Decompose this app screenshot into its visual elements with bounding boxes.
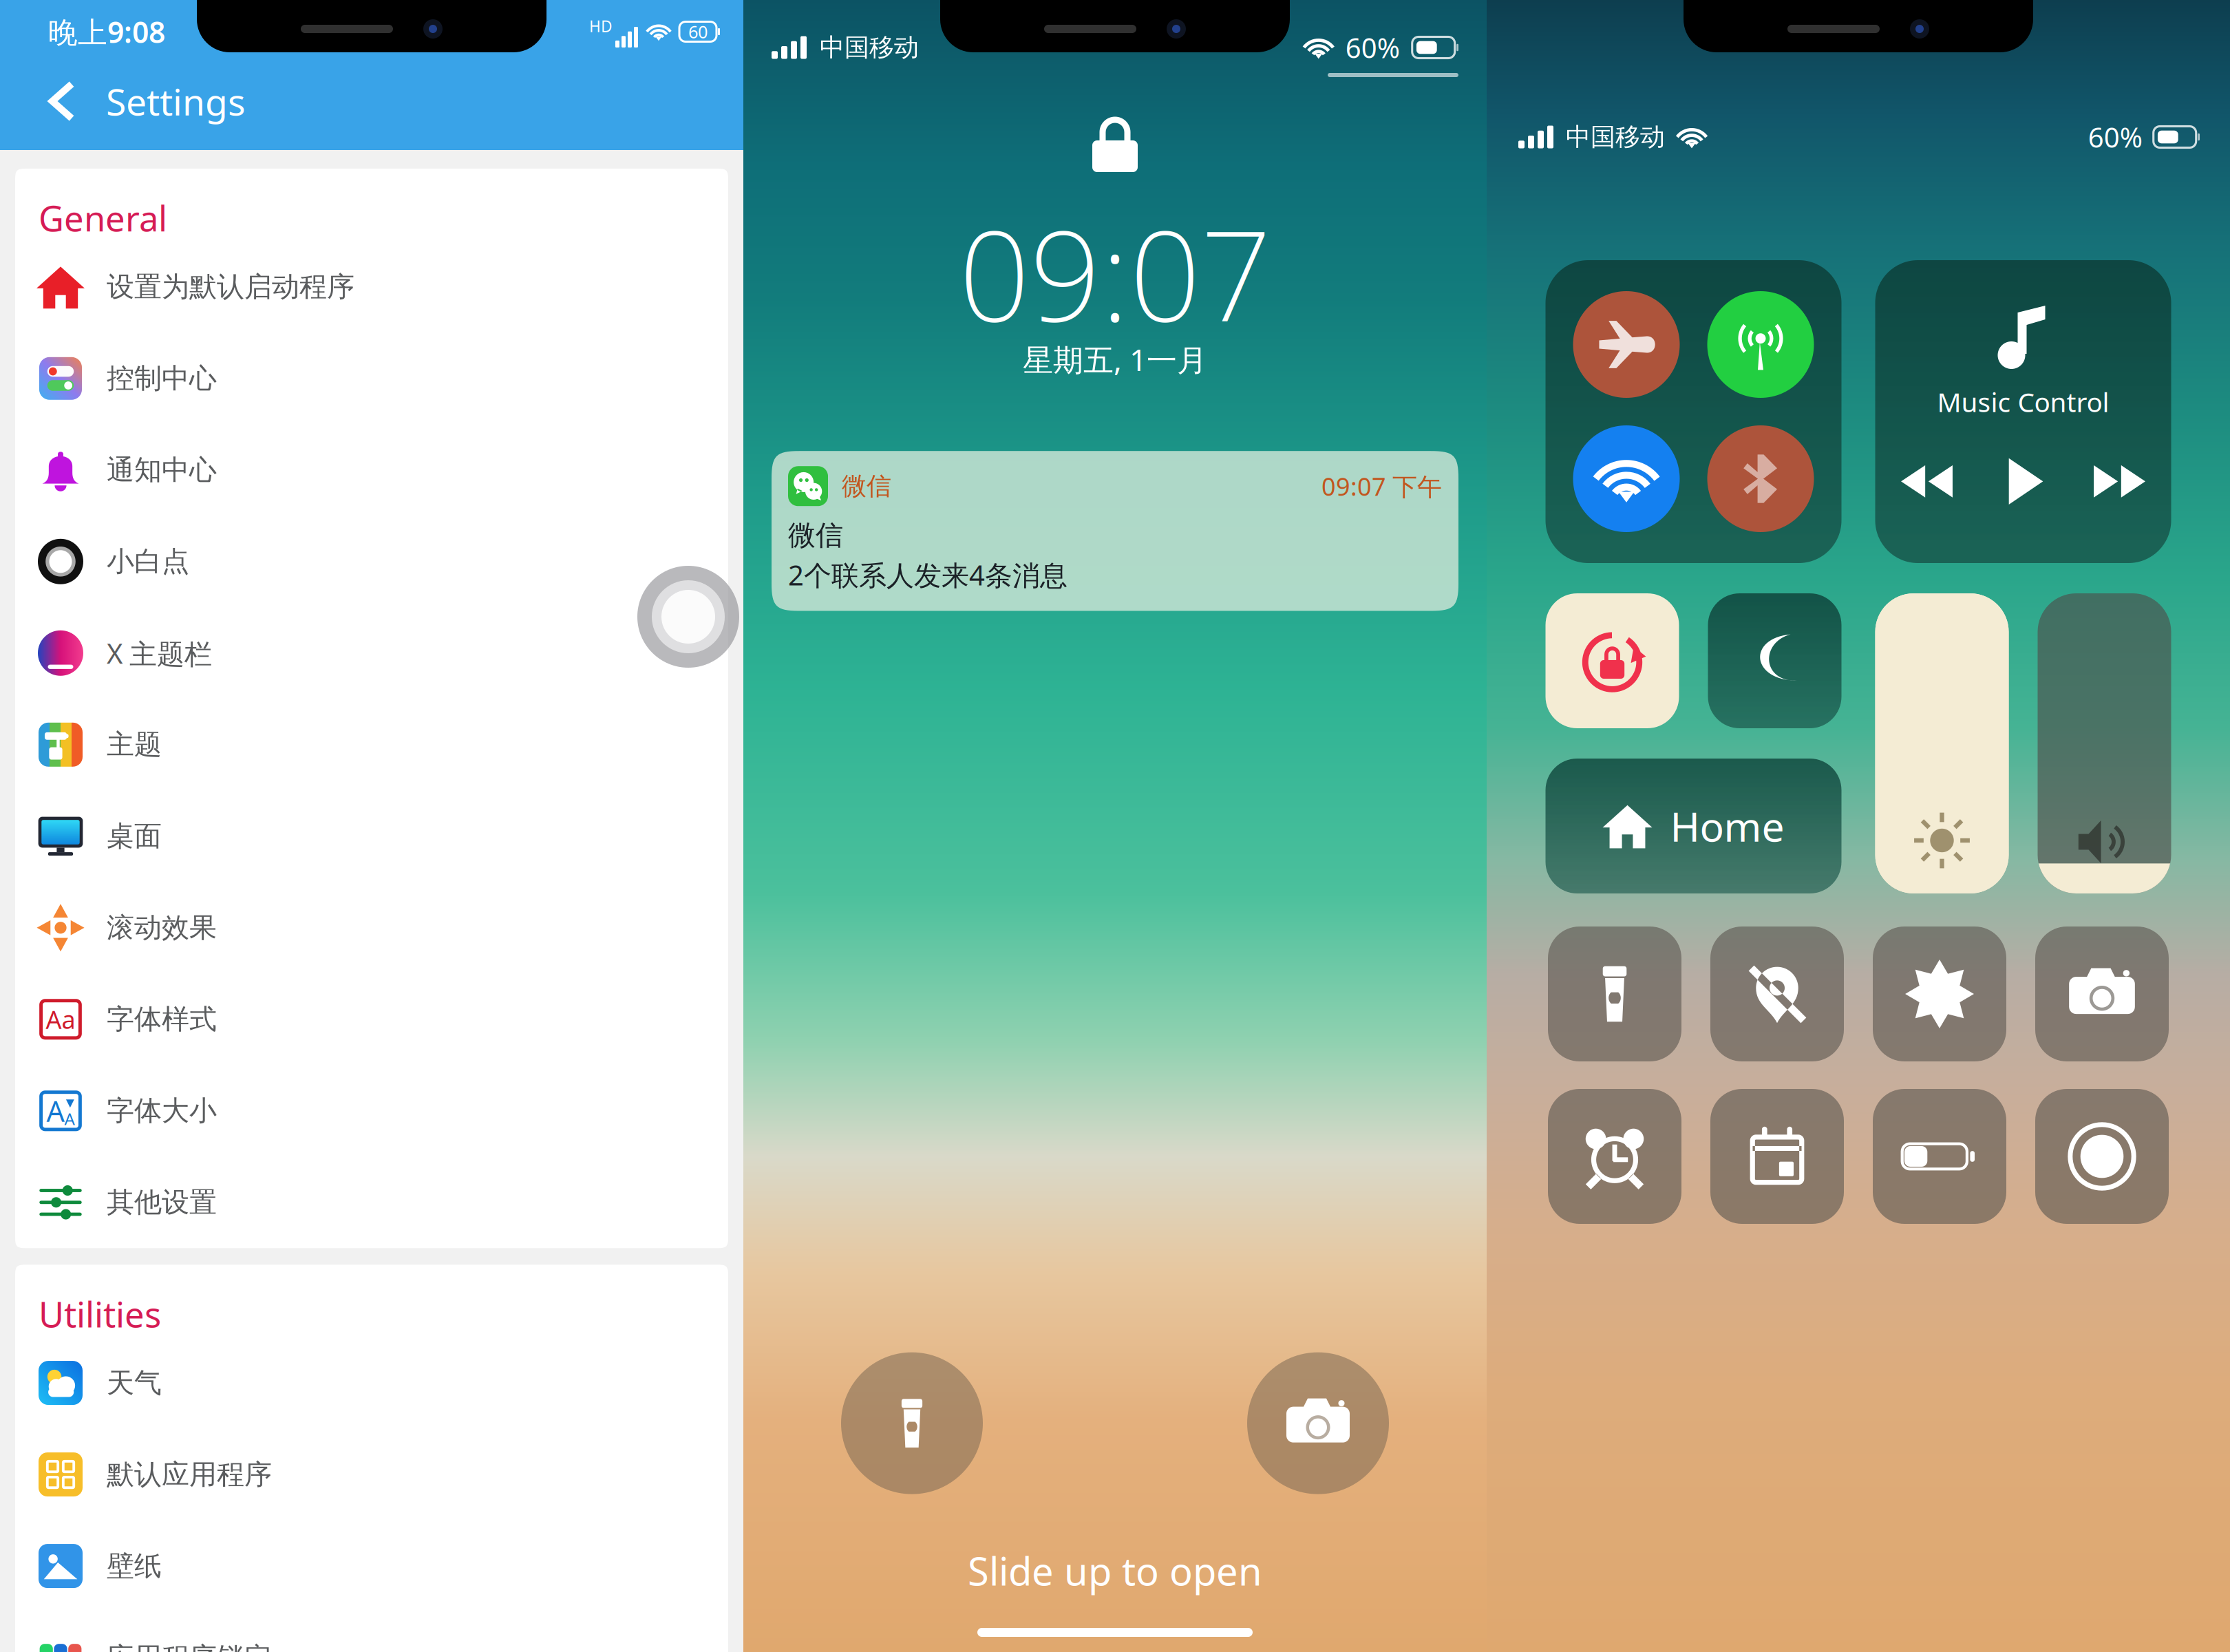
staticText: 主题	[107, 728, 162, 762]
staticText: Aa	[46, 1003, 75, 1036]
button[interactable]: Play	[1996, 454, 2051, 509]
staticText: 小白点	[107, 545, 189, 578]
button[interactable]: Cellular data	[1707, 291, 1814, 398]
button[interactable]: 微信	[772, 451, 1458, 611]
button[interactable]: Connectivity	[1546, 260, 1841, 563]
button[interactable]: X 主题栏	[15, 607, 728, 699]
staticText: 2个联系人发来4条消息	[788, 556, 1068, 593]
button[interactable]: 小白点	[15, 516, 728, 607]
staticText: 滚动效果	[107, 911, 217, 945]
button[interactable]: Aa	[15, 974, 728, 1065]
button[interactable]: Flashlight	[841, 1352, 983, 1494]
staticText: 09:07 下午	[1321, 470, 1442, 503]
button[interactable]: 设置为默认启动程序	[15, 241, 728, 333]
staticText: Settings	[106, 77, 246, 126]
button[interactable]: Music Control	[1875, 260, 2171, 563]
button[interactable]: 主题	[15, 699, 728, 790]
button[interactable]: 桌面	[15, 790, 728, 882]
button[interactable]: Brightness	[1875, 593, 2009, 893]
staticText: 字体大小	[107, 1094, 217, 1128]
staticText: HD	[589, 16, 613, 36]
staticText: X 主题栏	[107, 635, 212, 671]
staticText: Slide up to open	[968, 1545, 1262, 1596]
button[interactable]: Flashlight	[1548, 926, 1681, 1061]
button[interactable]: Wi-Fi	[1573, 425, 1680, 532]
staticText: Music Control	[1937, 384, 2109, 419]
staticText: 字体样式	[107, 1002, 217, 1036]
staticText: 09:07	[959, 190, 1271, 356]
button[interactable]: Low power mode	[1873, 1089, 2006, 1224]
button[interactable]: Home	[1546, 759, 1841, 893]
button[interactable]: Do not disturb	[1708, 593, 1841, 728]
button[interactable]: Bluetooth	[1707, 425, 1814, 532]
staticText: 微信	[788, 518, 843, 552]
staticText: A	[64, 1108, 75, 1130]
button[interactable]: 控制中心	[15, 333, 728, 424]
button[interactable]: 其他设置	[15, 1157, 728, 1248]
staticText: Home	[1670, 799, 1784, 853]
staticText: 微信	[842, 471, 891, 501]
button[interactable]: 壁纸	[15, 1520, 728, 1612]
staticText: 控制中心	[107, 362, 217, 395]
staticText: 其他设置	[107, 1185, 217, 1219]
staticText: 60	[688, 20, 708, 43]
button[interactable]: 应用程序锁定	[15, 1612, 728, 1652]
button[interactable]: 滚动效果	[15, 882, 728, 974]
staticText: 壁纸	[107, 1549, 162, 1583]
staticText: 60%	[1345, 29, 1400, 66]
staticText: 桌面	[107, 819, 162, 853]
staticText: 星期五, 1一月	[1023, 339, 1207, 379]
staticText: 中国移动	[1566, 122, 1665, 152]
button[interactable]: Calendar	[1710, 1089, 1844, 1224]
staticText: 中国移动	[820, 32, 919, 63]
button[interactable]: A	[15, 1065, 728, 1157]
staticText: General	[39, 195, 167, 241]
button[interactable]: Screen record	[2035, 1089, 2169, 1224]
button[interactable]: Fast forward	[2093, 455, 2146, 508]
staticText: 设置为默认启动程序	[107, 270, 354, 304]
button[interactable]: Back	[30, 70, 94, 133]
staticText: 天气	[107, 1366, 162, 1400]
button[interactable]: 默认应用程序	[15, 1429, 728, 1520]
button[interactable]: Rewind	[1900, 455, 1954, 508]
button[interactable]: Camera	[2035, 926, 2169, 1061]
button[interactable]: Rotation lock	[1546, 593, 1679, 728]
button[interactable]: Volume	[2038, 593, 2171, 893]
button[interactable]: 天气	[15, 1337, 728, 1429]
button[interactable]: Alarm	[1548, 1089, 1681, 1224]
staticText: 应用程序锁定	[107, 1641, 272, 1652]
staticText: 晚上9:08	[48, 12, 165, 51]
button[interactable]: Location off	[1710, 926, 1844, 1061]
staticText: A	[46, 1092, 64, 1130]
button[interactable]: 通知中心	[15, 424, 728, 516]
staticText: 默认应用程序	[107, 1458, 272, 1491]
button[interactable]: Brightness	[1873, 926, 2006, 1061]
staticText: 60%	[2088, 119, 2142, 155]
staticText: Utilities	[39, 1291, 161, 1337]
staticText: 通知中心	[107, 453, 217, 487]
button[interactable]: Camera	[1247, 1352, 1389, 1494]
button[interactable]: Airplane mode	[1573, 291, 1680, 398]
